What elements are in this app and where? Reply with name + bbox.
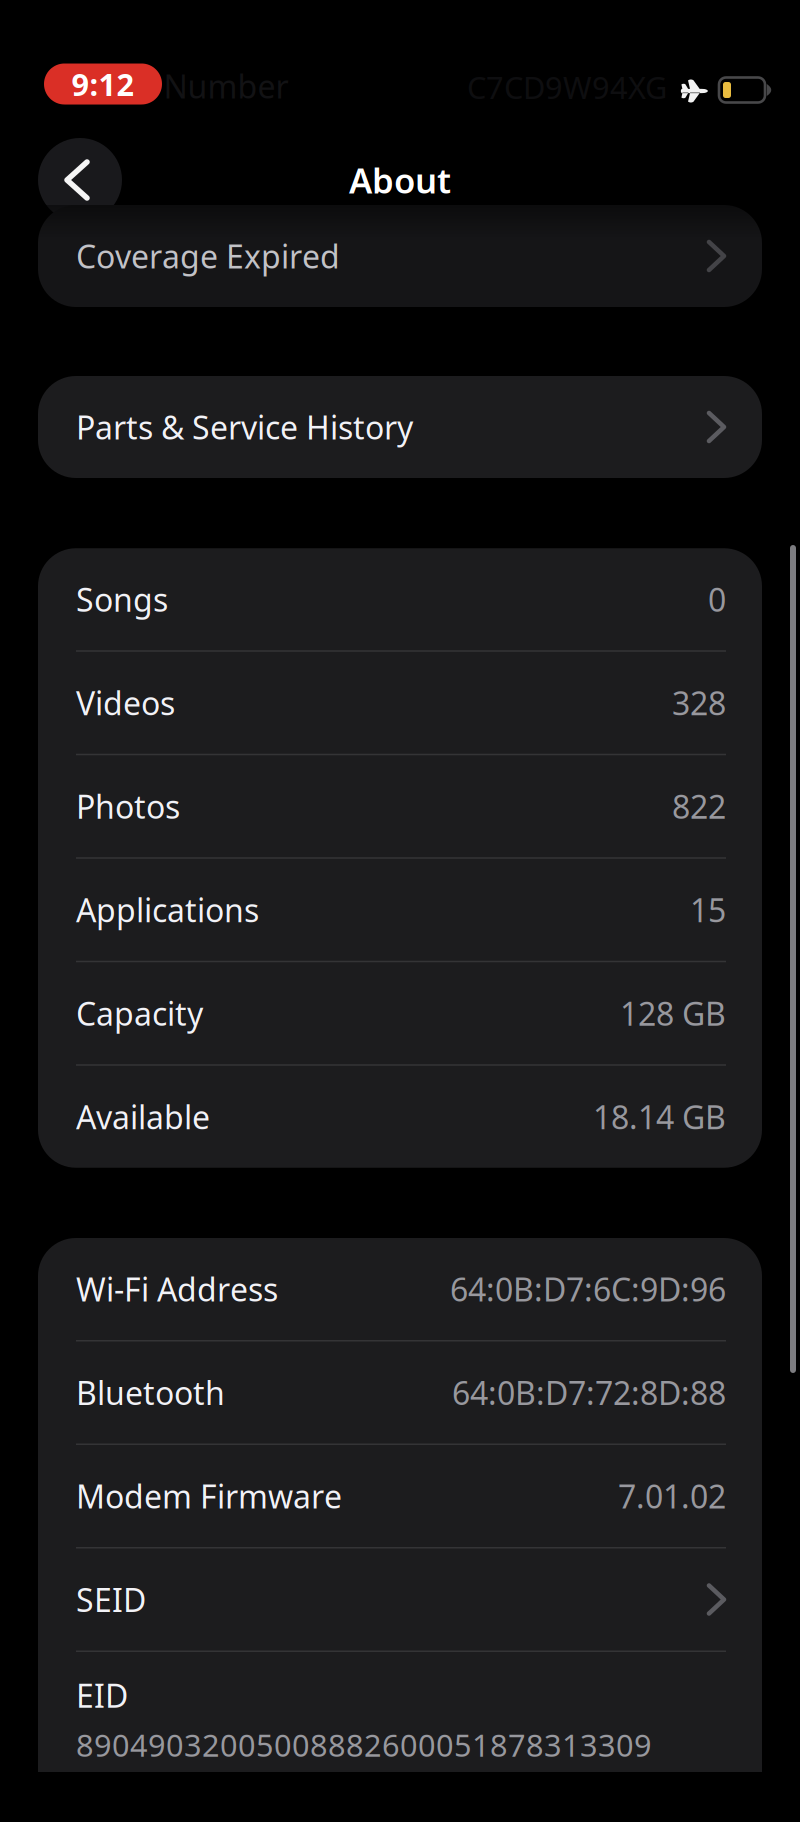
staticText: 64:0B:D7:72:8D:88 <box>452 1371 726 1414</box>
staticText: Modem Firmware <box>76 1475 342 1517</box>
staticText: Applications <box>76 888 259 931</box>
staticText: 9:12 <box>71 64 134 104</box>
staticText: 822 <box>672 785 726 827</box>
button[interactable]: Coverage Expired <box>38 205 762 307</box>
staticText: Videos <box>76 681 175 724</box>
staticText: Coverage Expired <box>76 235 340 277</box>
staticText: Number <box>163 65 288 107</box>
staticText: C7CD9W94XG <box>467 67 667 107</box>
staticText: SEID <box>76 1578 146 1621</box>
staticText: 328 <box>672 681 726 724</box>
staticText: 64:0B:D7:6C:9D:96 <box>450 1268 726 1310</box>
staticText: Parts & Service History <box>76 406 413 448</box>
staticText: Photos <box>76 785 180 827</box>
staticText: Wi-Fi Address <box>76 1268 278 1310</box>
staticText: About <box>349 157 451 203</box>
button[interactable]: SEID <box>38 1548 762 1650</box>
button[interactable]: Parts & Service History <box>38 376 762 478</box>
staticText: Songs <box>76 578 168 620</box>
staticText: Capacity <box>76 992 203 1034</box>
staticText: 128 GB <box>620 992 726 1034</box>
staticText: 7.01.02 <box>618 1475 726 1517</box>
staticText: EID <box>76 1674 128 1716</box>
staticText: 15 <box>690 888 726 931</box>
staticText: 0 <box>708 578 726 620</box>
staticText: Available <box>76 1095 210 1138</box>
staticText: Bluetooth <box>76 1371 225 1414</box>
staticText: 18.14 GB <box>593 1095 726 1138</box>
staticText: 89049032005008882600051878313309 <box>76 1724 652 1765</box>
button[interactable]: Back <box>38 138 122 222</box>
